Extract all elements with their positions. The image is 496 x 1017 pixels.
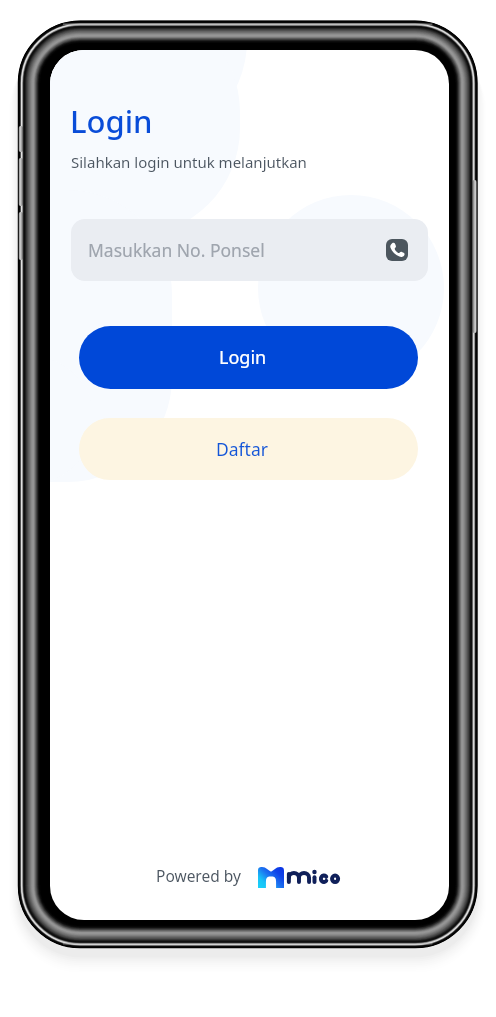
- button[interactable]: Masukkan No. Ponsel: [71, 219, 428, 281]
- staticText: Powered by: [156, 865, 241, 886]
- button[interactable]: Login: [79, 326, 418, 389]
- button[interactable]: Daftar: [79, 418, 418, 480]
- staticText: Login: [70, 100, 153, 142]
- staticText: Daftar: [216, 437, 268, 461]
- staticText: Masukkan No. Ponsel: [88, 238, 265, 262]
- staticText: Silahkan login untuk melanjutkan: [71, 152, 307, 172]
- staticText: Login: [219, 345, 267, 370]
- button[interactable]: Enter phone number: [386, 239, 408, 261]
